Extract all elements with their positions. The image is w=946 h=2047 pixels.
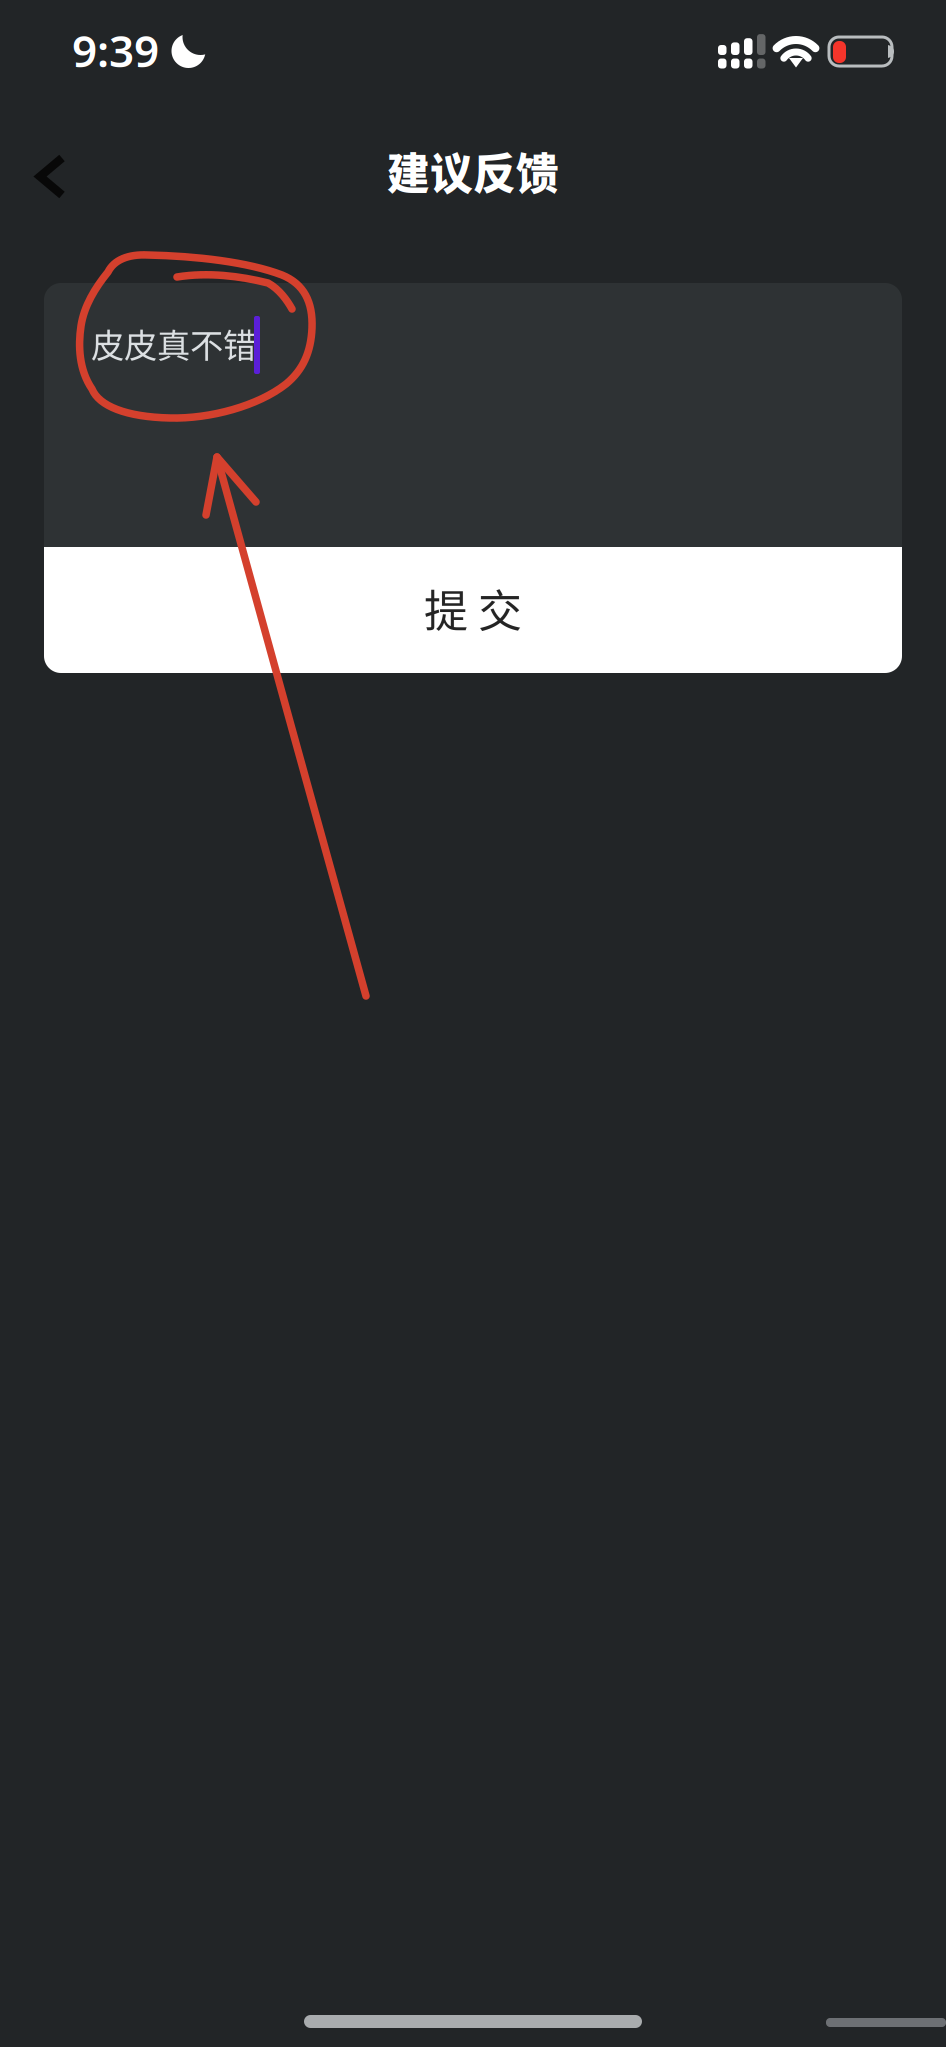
button[interactable]: Back (9, 128, 113, 225)
staticText: 建议反馈 (387, 140, 559, 202)
staticText: 9:39 (72, 21, 159, 79)
staticText: 提 交 (424, 576, 522, 640)
button[interactable]: 皮皮真不错 (44, 283, 902, 547)
staticText: 皮皮真不错 (91, 319, 256, 367)
button[interactable]: 提 交 (44, 547, 902, 673)
